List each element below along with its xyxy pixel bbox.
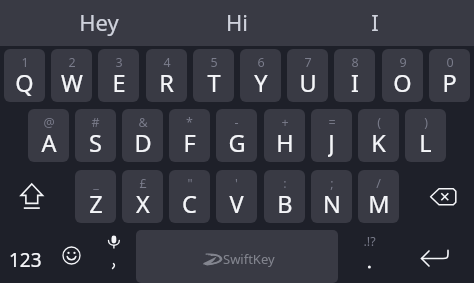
staticText: T [207, 67, 221, 97]
button[interactable]: 7 [287, 49, 328, 102]
button[interactable]: 3 [98, 49, 139, 102]
button[interactable]: + [264, 109, 305, 162]
staticText: W [61, 67, 83, 97]
button[interactable]: 8 [334, 49, 375, 102]
staticText: H [276, 127, 294, 157]
staticText: _ [93, 175, 99, 192]
button[interactable]: _ [75, 170, 116, 223]
staticText: 6 [257, 54, 265, 71]
button[interactable]: ( [358, 109, 399, 162]
staticText: : [283, 175, 287, 192]
button[interactable]: 0 [429, 49, 470, 102]
button[interactable]: 123 [0, 230, 50, 283]
staticText: ; [330, 175, 334, 192]
staticText: 2 [68, 54, 76, 71]
staticText: £ [139, 175, 147, 192]
staticText: A [41, 127, 57, 157]
staticText: Q [15, 67, 34, 97]
button[interactable]: = [311, 109, 352, 162]
button[interactable]: £ [122, 170, 163, 223]
button[interactable]: Backspace [402, 170, 474, 223]
staticText: X [136, 188, 150, 218]
staticText: C [182, 188, 197, 218]
button[interactable]: 6 [240, 49, 281, 102]
staticText: ( [377, 114, 381, 131]
button[interactable]: & [122, 109, 163, 162]
staticText: 123 [9, 247, 42, 273]
staticText: / [376, 175, 381, 192]
button[interactable]: Enter [400, 230, 474, 283]
staticText: Z [89, 188, 103, 218]
staticText: 5 [210, 54, 218, 71]
staticText: I [351, 67, 359, 97]
staticText: = [328, 114, 336, 131]
staticText: G [228, 127, 246, 157]
staticText: + [281, 114, 289, 131]
staticText: 1 [21, 54, 29, 71]
staticText: R [159, 67, 174, 97]
button[interactable]: Hi [169, 0, 305, 46]
staticText: V [229, 188, 244, 218]
staticText: - [234, 114, 239, 131]
staticText: " [187, 175, 193, 192]
button[interactable]: 2 [51, 49, 92, 102]
staticText: & [138, 114, 148, 131]
button[interactable]: 4 [146, 49, 187, 102]
button[interactable]: / [358, 170, 399, 223]
button[interactable]: I [307, 0, 443, 46]
staticText: N [323, 188, 341, 218]
staticText: Hi [226, 7, 248, 37]
staticText: F [183, 127, 196, 157]
button[interactable]: # [75, 109, 116, 162]
staticText: 9 [399, 54, 407, 71]
button[interactable]: " [169, 170, 210, 223]
button[interactable]: * [169, 109, 210, 162]
staticText: Y [254, 67, 268, 97]
staticText: K [371, 127, 386, 157]
staticText: * [186, 114, 193, 131]
button[interactable]: SwiftKey [136, 230, 338, 283]
staticText: P [442, 67, 457, 97]
staticText: D [134, 127, 152, 157]
staticText: 8 [351, 54, 359, 71]
staticText: 4 [163, 54, 171, 71]
button[interactable]: ; [311, 170, 352, 223]
staticText: .!? [363, 233, 376, 249]
staticText: J [328, 127, 335, 157]
staticText: E [112, 67, 126, 97]
staticText: ' [235, 175, 238, 192]
button[interactable]: Emoji [51, 230, 92, 283]
button[interactable]: .!? [345, 230, 393, 283]
staticText: U [299, 67, 317, 97]
button[interactable]: 1 [4, 49, 45, 102]
button[interactable]: 5 [193, 49, 234, 102]
staticText: O [393, 67, 412, 97]
button[interactable]: ) [405, 109, 446, 162]
staticText: ) [424, 114, 428, 131]
button[interactable]: Hey [31, 0, 167, 46]
staticText: M [368, 188, 390, 218]
staticText: # [91, 114, 100, 131]
button[interactable]: Shift [0, 170, 71, 223]
staticText: L [419, 127, 432, 157]
button[interactable]: Voice input [94, 230, 135, 283]
staticText: Hey [79, 7, 119, 37]
staticText: B [277, 188, 293, 218]
button[interactable]: ' [216, 170, 257, 223]
button[interactable]: - [216, 109, 257, 162]
button[interactable]: : [264, 170, 305, 223]
staticText: 7 [304, 54, 312, 71]
button[interactable]: @ [28, 109, 69, 162]
staticText: SwiftKey [223, 250, 275, 268]
button[interactable]: 9 [382, 49, 423, 102]
staticText: I [371, 7, 379, 37]
staticText: 3 [115, 54, 123, 71]
staticText: 0 [446, 54, 454, 71]
staticText: @ [43, 114, 55, 131]
staticText: S [89, 127, 102, 157]
